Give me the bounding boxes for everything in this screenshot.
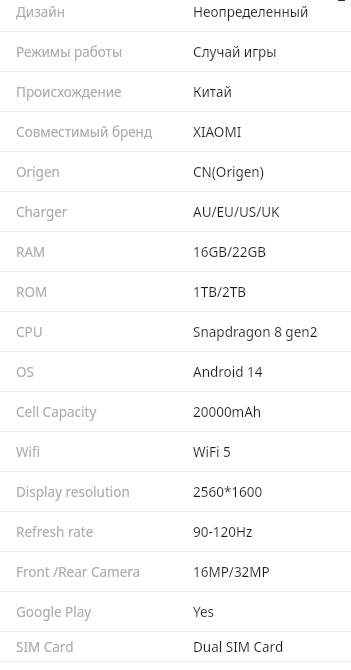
staticText: RAM (16, 243, 46, 261)
staticText: XIAOMI (193, 123, 242, 141)
staticText: CN(Origen) (193, 163, 264, 181)
staticText: 16MP/32MP (193, 563, 270, 581)
staticText: 16GB/22GB (193, 243, 267, 261)
staticText: 1TB/2TB (193, 283, 247, 301)
button[interactable]: Cell Capacity (0, 392, 351, 432)
staticText: WiFi 5 (193, 443, 231, 461)
staticText: SIM Card (16, 638, 74, 656)
staticText: CPU (16, 323, 43, 341)
staticText: 90-120Hz (193, 523, 253, 541)
staticText: ROM (16, 283, 48, 301)
staticText: Refresh rate (16, 523, 94, 541)
staticText: Дизайн (16, 3, 65, 21)
staticText: Совместимый бренд (16, 123, 153, 141)
button[interactable]: SIM Card (0, 632, 351, 662)
staticText: 2560*1600 (193, 483, 263, 501)
staticText: Google Play (16, 603, 92, 621)
button[interactable]: OS (0, 352, 351, 392)
button[interactable]: CPU (0, 312, 351, 352)
button[interactable]: ROM (0, 272, 351, 312)
staticText: 20000mAh (193, 403, 262, 421)
staticText: Wifi (16, 443, 41, 461)
button[interactable]: RAM (0, 232, 351, 272)
button[interactable]: Display resolution (0, 472, 351, 512)
button[interactable]: Front /Rear Camera (0, 552, 351, 592)
staticText: Происхождение (16, 83, 122, 101)
staticText: Yes (193, 603, 215, 621)
button[interactable]: Дизайн (0, 0, 351, 32)
staticText: Android 14 (193, 363, 263, 381)
button[interactable]: Refresh rate (0, 512, 351, 552)
staticText: Snapdragon 8 gen2 (193, 323, 318, 341)
button[interactable]: Origen (0, 152, 351, 192)
staticText: Front /Rear Camera (16, 563, 141, 581)
staticText: Режимы работы (16, 43, 123, 61)
button[interactable]: Wifi (0, 432, 351, 472)
button[interactable]: Charger (0, 192, 351, 232)
staticText: Display resolution (16, 483, 130, 501)
staticText: Dual SIM Card (193, 638, 284, 656)
staticText: Charger (16, 203, 68, 221)
staticText: Китай (193, 83, 232, 101)
staticText: Случай игры (193, 43, 277, 61)
staticText: Cell Capacity (16, 403, 97, 421)
staticText: AU/EU/US/UK (193, 203, 280, 221)
button[interactable]: Режимы работы (0, 32, 351, 72)
button[interactable]: Google Play (0, 592, 351, 632)
button[interactable]: Совместимый бренд (0, 112, 351, 152)
staticText: OS (16, 363, 34, 381)
button[interactable]: Происхождение (0, 72, 351, 112)
staticText: Неопределенный (193, 3, 309, 21)
staticText: Origen (16, 163, 60, 181)
